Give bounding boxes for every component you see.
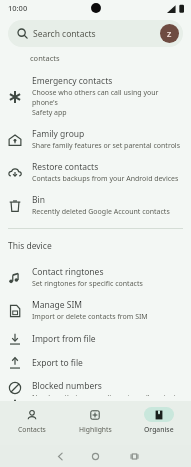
other: Back	[56, 452, 65, 461]
staticText: Restore contacts	[32, 161, 99, 173]
button[interactable]: Family group	[0, 123, 191, 156]
staticText: Family group	[32, 128, 85, 140]
button[interactable]: Import from file	[0, 327, 191, 351]
button[interactable]: Restore contacts	[0, 156, 191, 189]
staticText: Manage SIM	[32, 299, 82, 311]
button[interactable]: Manage SIM	[0, 294, 191, 327]
button[interactable]: Account	[160, 24, 179, 43]
button[interactable]: Emergency contacts	[0, 70, 191, 123]
staticText: Set ringtones for specific contacts	[32, 279, 143, 289]
staticText: This device	[8, 240, 52, 252]
staticText: Contacts backups from your Android devic…	[32, 174, 179, 184]
staticText: Share family features or set parental co…	[32, 141, 181, 151]
staticText: Choose who others can call using your ph…	[32, 88, 183, 118]
staticText: Recently deleted Google Account contacts	[32, 207, 170, 217]
other: Home	[91, 452, 100, 461]
button[interactable]: Search	[8, 20, 183, 47]
button[interactable]: Contacts	[0, 401, 63, 445]
button[interactable]: Highlights	[63, 401, 127, 445]
staticText: Highlights	[79, 425, 112, 434]
staticText: Z	[167, 29, 172, 39]
staticText: Search contacts	[33, 28, 96, 40]
button[interactable]: Bin	[0, 189, 191, 222]
staticText: contacts	[30, 53, 60, 63]
staticText: Import from file	[32, 333, 96, 345]
button[interactable]: Organise	[127, 401, 191, 445]
staticText: Contact ringtones	[32, 266, 104, 278]
staticText: Export to file	[32, 357, 83, 369]
staticText: Blocked numbers	[32, 380, 102, 392]
button[interactable]: Blocked numbers	[0, 375, 191, 401]
button[interactable]: Export to file	[0, 351, 191, 375]
staticText: Contacts	[18, 425, 46, 434]
staticText: Organise	[144, 425, 174, 434]
staticText: Bin	[32, 194, 45, 206]
staticText: Numbers that you won't receive calls or …	[32, 393, 183, 396]
staticText: 10:00	[8, 3, 28, 13]
other: Search	[17, 28, 28, 39]
staticText: Emergency contacts	[32, 75, 113, 87]
other: Recents	[130, 452, 139, 461]
button[interactable]: Contact ringtones	[0, 261, 191, 294]
staticText: Import or delete contacts from SIM	[32, 312, 148, 322]
